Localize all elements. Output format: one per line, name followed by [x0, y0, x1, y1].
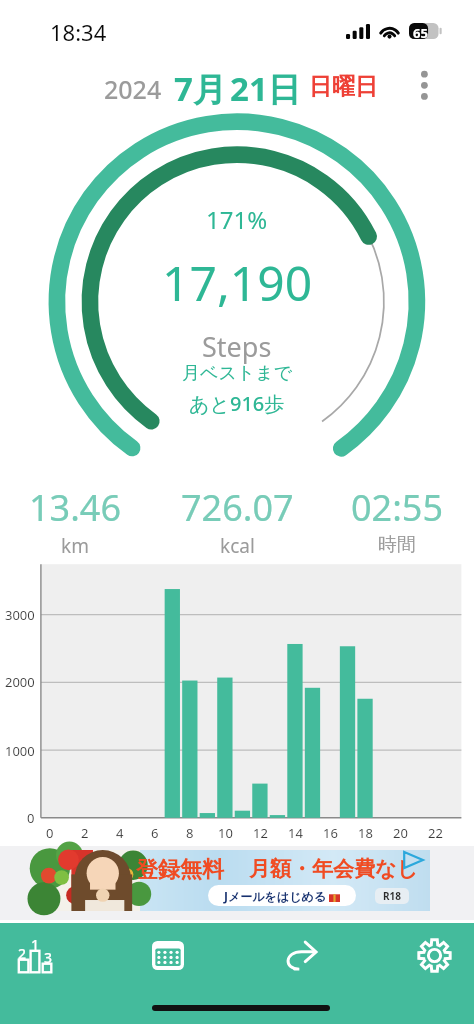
- staticText: kcal: [220, 533, 255, 559]
- button[interactable]: Ranking: [0, 919, 118, 991]
- button[interactable]: 13.46: [0, 483, 155, 559]
- staticText: あと916歩: [189, 390, 285, 417]
- staticText: 時間: [378, 533, 416, 557]
- staticText: 18:34: [50, 17, 107, 47]
- staticText: R18: [383, 889, 401, 903]
- staticText: 17,190: [162, 250, 313, 315]
- staticText: 日曜日: [309, 72, 378, 101]
- staticText: Jメールをはじめる: [224, 888, 326, 904]
- button[interactable]: 726.07: [157, 483, 317, 559]
- staticText: 65: [413, 24, 428, 40]
- staticText: 月ベストまで: [182, 362, 293, 385]
- staticText: 8: [186, 824, 194, 842]
- staticText: 726.07: [181, 483, 294, 532]
- staticText: 3: [44, 948, 53, 967]
- staticText: 16: [323, 824, 338, 842]
- staticText: 20: [393, 824, 408, 842]
- staticText: 1: [31, 935, 40, 954]
- staticText: 月額・年会費なし: [249, 856, 418, 882]
- staticText: 171%: [206, 203, 268, 236]
- button[interactable]: Settings: [356, 919, 474, 991]
- staticText: 18: [358, 824, 373, 842]
- staticText: 2: [81, 824, 89, 842]
- staticText: 14: [288, 824, 303, 842]
- staticText: 2: [18, 944, 27, 963]
- button[interactable]: 02:55: [317, 483, 474, 557]
- button[interactable]: Advertisement: [42, 850, 430, 911]
- button[interactable]: Calendar: [118, 919, 236, 991]
- button[interactable]: More options: [404, 63, 444, 107]
- staticText: 02:55: [351, 483, 444, 532]
- button[interactable]: Share: [236, 919, 356, 991]
- staticText: 4: [116, 824, 124, 842]
- staticText: 22: [428, 824, 443, 842]
- staticText: 登録無料: [136, 856, 224, 884]
- staticText: 13.46: [29, 483, 122, 532]
- staticText: 12: [253, 824, 268, 842]
- staticText: km: [61, 533, 89, 559]
- staticText: 10: [218, 824, 233, 842]
- staticText: 21日: [230, 66, 301, 111]
- staticText: 7月: [174, 66, 226, 111]
- staticText: 6: [151, 824, 159, 842]
- staticText: 3000: [5, 606, 35, 624]
- staticText: 0: [46, 824, 54, 842]
- staticText: Steps: [202, 328, 272, 365]
- staticText: 1000: [5, 742, 35, 760]
- staticText: 0: [27, 809, 35, 827]
- staticText: 2000: [5, 673, 35, 691]
- staticText: 2024: [104, 72, 162, 106]
